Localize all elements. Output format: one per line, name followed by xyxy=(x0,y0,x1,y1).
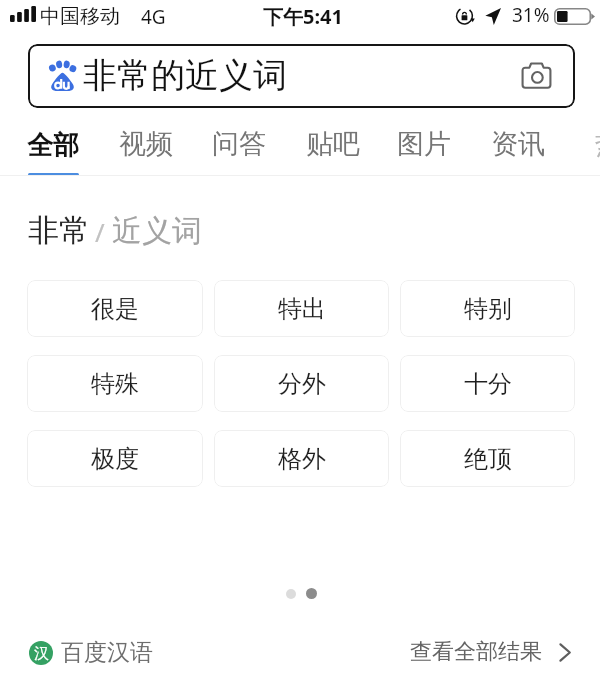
staticText: 特殊 xyxy=(91,369,139,399)
staticText: / xyxy=(95,214,105,249)
button[interactable]: 汉 xyxy=(29,638,153,667)
button[interactable]: 非常的近义词 xyxy=(28,44,575,108)
staticText: 下午5:41 xyxy=(263,3,343,30)
button[interactable]: 热 xyxy=(563,121,600,167)
staticText: 非常 xyxy=(28,211,90,250)
button[interactable]: 格外 xyxy=(214,430,389,487)
staticText: 查看全部结果 xyxy=(410,638,542,666)
staticText: 全部 xyxy=(27,129,79,162)
button[interactable]: 贴吧 xyxy=(288,121,378,167)
button[interactable]: 全部 xyxy=(7,122,99,168)
button[interactable]: 图片 xyxy=(379,121,469,167)
staticText: 问答 xyxy=(212,127,266,161)
button[interactable]: 极度 xyxy=(27,430,203,487)
button[interactable]: Camera search xyxy=(519,59,553,93)
staticText: 极度 xyxy=(91,444,139,474)
staticText: 热 xyxy=(595,127,600,161)
staticText: 贴吧 xyxy=(306,127,360,161)
staticText: 资讯 xyxy=(491,127,545,161)
staticText: 分外 xyxy=(278,369,326,399)
staticText: 图片 xyxy=(397,127,451,161)
button[interactable]: 问答 xyxy=(194,121,284,167)
staticText: 百度汉语 xyxy=(61,638,153,667)
button[interactable]: 查看全部结果 xyxy=(410,638,571,666)
button[interactable]: 分外 xyxy=(214,355,389,412)
button[interactable]: 十分 xyxy=(400,355,575,412)
button[interactable]: 特别 xyxy=(400,280,575,337)
staticText: 很是 xyxy=(91,294,139,324)
staticText: 视频 xyxy=(119,127,173,161)
staticText: 非常的近义词 xyxy=(83,54,287,97)
staticText: 格外 xyxy=(278,444,326,474)
staticText: 汉 xyxy=(34,644,49,663)
staticText: 近义词 xyxy=(112,212,202,250)
staticText: 十分 xyxy=(464,369,512,399)
staticText: 特出 xyxy=(278,294,326,324)
button[interactable]: 视频 xyxy=(101,121,191,167)
button[interactable]: 特殊 xyxy=(27,355,203,412)
staticText: 31% xyxy=(512,2,550,28)
staticText: 特别 xyxy=(464,294,512,324)
button[interactable]: 特出 xyxy=(214,280,389,337)
staticText: 中国移动 xyxy=(40,4,120,29)
staticText: 绝顶 xyxy=(464,444,512,474)
staticText: 4G xyxy=(141,4,166,30)
button[interactable]: 绝顶 xyxy=(400,430,575,487)
button[interactable]: 资讯 xyxy=(473,121,563,167)
button[interactable]: 很是 xyxy=(27,280,203,337)
